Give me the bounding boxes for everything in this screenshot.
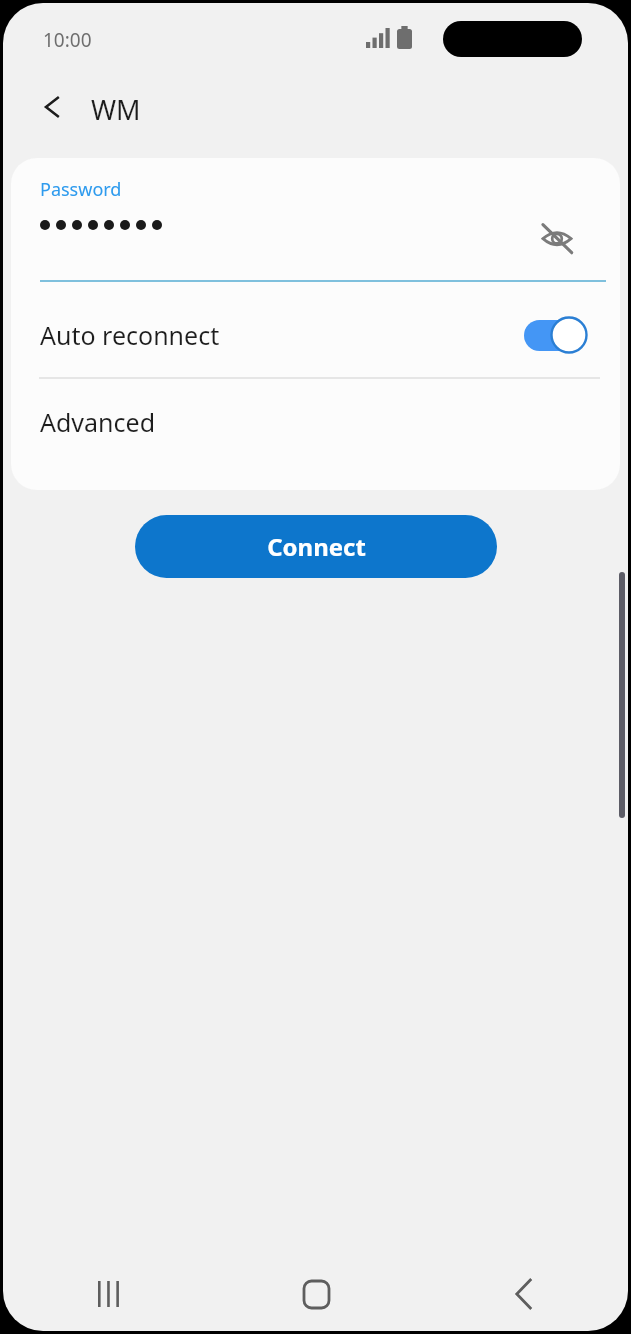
staticText: WM xyxy=(91,91,141,128)
button[interactable]: Auto reconnect xyxy=(11,292,620,377)
staticText: Auto reconnect xyxy=(40,318,220,352)
button[interactable]: Show password xyxy=(529,210,585,266)
button[interactable]: Back xyxy=(25,79,81,135)
button[interactable]: Back xyxy=(420,1257,628,1331)
button[interactable]: Password xyxy=(11,158,620,292)
button[interactable]: Recents xyxy=(3,1257,212,1331)
staticText: 10:00 xyxy=(43,27,92,53)
button[interactable]: Home xyxy=(212,1257,420,1331)
staticText: Connect xyxy=(267,530,366,563)
button[interactable]: Connect xyxy=(135,515,497,578)
button[interactable]: Advanced xyxy=(11,379,620,464)
staticText: Advanced xyxy=(40,405,156,439)
staticText: Password xyxy=(40,177,122,202)
